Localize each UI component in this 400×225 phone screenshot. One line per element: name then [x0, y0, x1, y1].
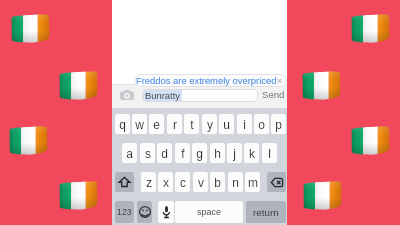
button[interactable]: d: [157, 143, 172, 163]
button[interactable]: m: [245, 172, 260, 192]
staticText: r: [173, 118, 177, 131]
button[interactable]: u: [219, 114, 234, 134]
staticText: Freddos are extremely overpriced: [136, 75, 277, 86]
button[interactable]: Backspace: [267, 172, 286, 192]
button[interactable]: b: [210, 172, 225, 192]
button[interactable]: Shift: [115, 172, 134, 192]
staticText: x: [163, 176, 169, 189]
button[interactable]: Freddos are extremely overpriced: [134, 74, 287, 87]
staticText: Bunratty: [145, 90, 180, 101]
staticText: 123: [117, 207, 132, 217]
staticText: c: [180, 176, 186, 189]
staticText: e: [153, 118, 160, 131]
staticText: s: [145, 147, 151, 160]
staticText: q: [119, 118, 126, 131]
staticText: b: [214, 176, 221, 189]
staticText: Send: [262, 89, 285, 100]
staticText: p: [275, 118, 282, 131]
button[interactable]: z: [141, 172, 156, 192]
button[interactable]: x: [158, 172, 173, 192]
button[interactable]: y: [202, 114, 217, 134]
button[interactable]: j: [227, 143, 242, 163]
staticText: u: [223, 118, 230, 131]
button[interactable]: Camera: [120, 90, 134, 100]
button[interactable]: o: [254, 114, 269, 134]
staticText: v: [198, 176, 204, 189]
button[interactable]: s: [140, 143, 155, 163]
button[interactable]: a: [122, 143, 137, 163]
button[interactable]: 123: [115, 201, 134, 223]
button[interactable]: n: [228, 172, 243, 192]
staticText: i: [243, 118, 246, 131]
button[interactable]: p: [271, 114, 286, 134]
staticText: n: [232, 176, 239, 189]
button[interactable]: i: [237, 114, 252, 134]
staticText: h: [214, 147, 221, 160]
button[interactable]: l: [262, 143, 277, 163]
button[interactable]: f: [175, 143, 190, 163]
staticText: ×: [277, 76, 283, 86]
staticText: w: [135, 118, 144, 131]
button[interactable]: return: [246, 201, 286, 223]
button[interactable]: w: [132, 114, 147, 134]
button[interactable]: Emoji: [137, 201, 152, 223]
staticText: k: [249, 147, 255, 160]
staticText: space: [197, 207, 222, 217]
button[interactable]: e: [149, 114, 164, 134]
staticText: o: [258, 118, 265, 131]
button[interactable]: q: [115, 114, 130, 134]
button[interactable]: Bunratty: [142, 89, 258, 102]
staticText: l: [268, 147, 271, 160]
button[interactable]: Dictation: [158, 201, 174, 223]
staticText: m: [248, 176, 258, 189]
button[interactable]: h: [210, 143, 225, 163]
staticText: t: [190, 118, 194, 131]
staticText: g: [196, 147, 203, 160]
staticText: return: [253, 207, 279, 218]
staticText: j: [233, 147, 236, 160]
staticText: d: [161, 147, 168, 160]
button[interactable]: space: [175, 201, 243, 223]
button[interactable]: v: [193, 172, 208, 192]
button[interactable]: t: [184, 114, 199, 134]
staticText: f: [181, 147, 185, 160]
staticText: y: [207, 118, 213, 131]
button[interactable]: g: [192, 143, 207, 163]
button[interactable]: k: [244, 143, 259, 163]
staticText: z: [146, 176, 152, 189]
staticText: a: [126, 147, 133, 160]
button[interactable]: Send: [262, 87, 285, 102]
button[interactable]: r: [167, 114, 182, 134]
button[interactable]: c: [175, 172, 190, 192]
